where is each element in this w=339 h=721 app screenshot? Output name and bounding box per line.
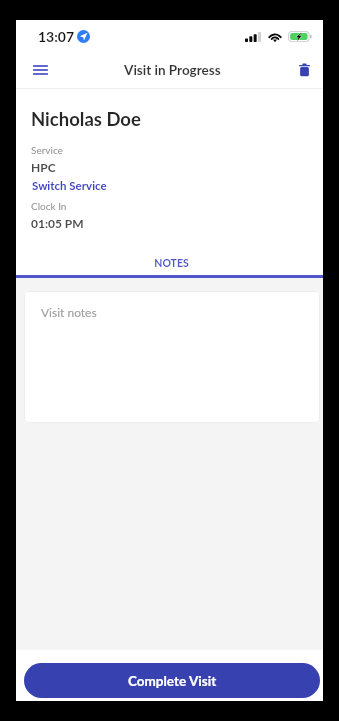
staticText: NOTES — [154, 257, 189, 270]
staticText: 01:05 PM — [31, 216, 84, 230]
button[interactable]: NOTES — [16, 253, 323, 275]
button[interactable]: Open navigation menu — [25, 55, 55, 85]
button[interactable]: Complete Visit — [24, 663, 320, 698]
staticText: Visit notes — [41, 305, 97, 319]
staticText: Service — [31, 144, 63, 156]
staticText: 13:07 — [38, 28, 75, 45]
button[interactable]: Delete visit — [291, 57, 317, 83]
button[interactable]: Visit notes — [24, 291, 320, 423]
staticText: Nicholas Doe — [31, 108, 141, 130]
staticText: HPC — [31, 160, 56, 174]
staticText: Visit in Progress — [124, 62, 221, 78]
button[interactable]: Switch Service — [32, 179, 107, 193]
staticText: Complete Visit — [128, 673, 217, 689]
staticText: Switch Service — [32, 179, 107, 193]
staticText: Clock In — [31, 200, 67, 212]
